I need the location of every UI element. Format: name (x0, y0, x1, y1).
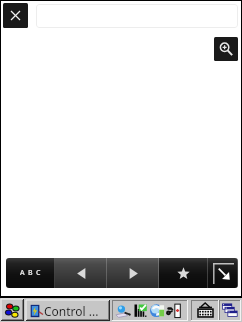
button[interactable]: Address field (36, 4, 238, 28)
button[interactable]: Control ... (26, 300, 110, 321)
button[interactable]: Previous (55, 258, 107, 288)
staticText: A B C (20, 268, 42, 278)
button[interactable]: Favourites (159, 258, 208, 288)
button[interactable]: Hide toolbar (208, 258, 238, 288)
button[interactable]: Close (3, 3, 28, 28)
button[interactable]: Next (107, 258, 159, 288)
button[interactable]: Zoom in (214, 37, 238, 61)
button[interactable]: ABC (6, 258, 55, 288)
staticText: Control ... (44, 303, 99, 319)
button[interactable]: Start (1, 299, 24, 321)
